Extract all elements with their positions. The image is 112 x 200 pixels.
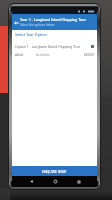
staticText: $80.00 [84,53,94,57]
staticText: Select the options below [20,23,55,27]
button[interactable]: ENQUIRE NOW [12,166,97,176]
staticText: ENQUIRE NOW [42,169,67,174]
staticText: Option 1 - Langkawi Island Hopping Tour [15,44,81,49]
button[interactable]: Recent apps [74,177,83,186]
staticText: Select Tour Option [15,32,47,37]
button[interactable]: Back [12,15,20,30]
staticText: Adult [15,52,24,57]
button[interactable]: Option 1 - Langkawi Island Hopping Tour [15,44,94,49]
staticText: Available [36,53,50,57]
staticText: Tour 1 - Langkawi Island Hopping Tour [20,17,86,22]
button[interactable]: Home [51,177,60,186]
button[interactable]: Back [27,177,36,186]
